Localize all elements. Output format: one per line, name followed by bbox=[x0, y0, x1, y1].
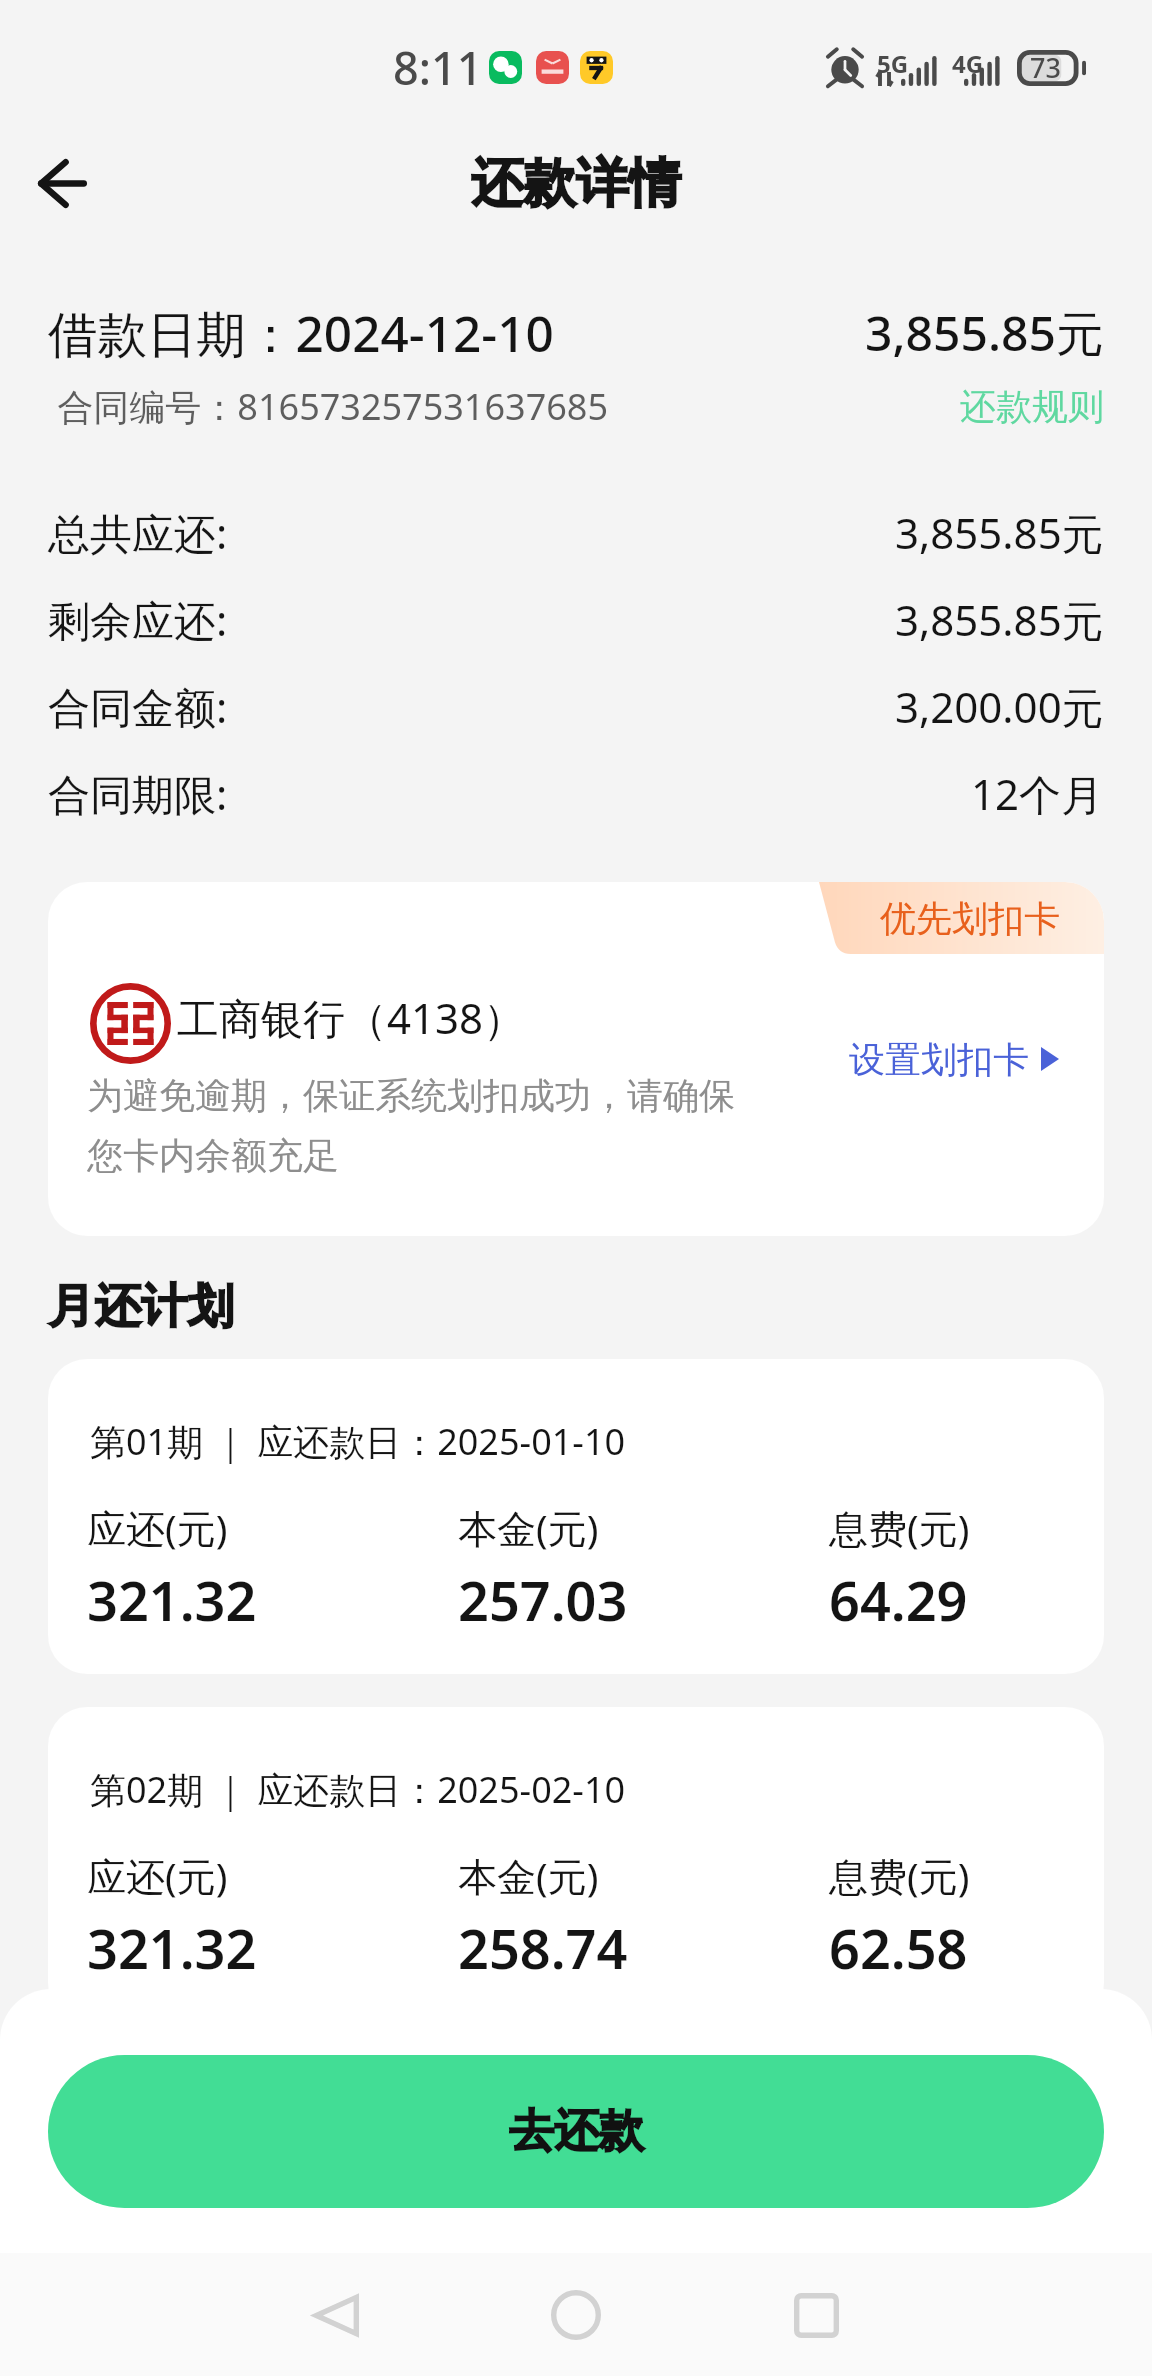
staticText: 应还(元) bbox=[87, 1849, 228, 1902]
staticText: 合同编号：816573257531637685 bbox=[48, 382, 609, 431]
button[interactable]: 第01期 ｜ 应还款日：2025-01-10 bbox=[48, 1359, 1104, 1674]
staticText: 总共应还: bbox=[48, 504, 228, 561]
staticText: 月还计划 bbox=[48, 1277, 234, 1336]
button[interactable]: Home bbox=[534, 2273, 618, 2357]
staticText: 本金(元) bbox=[458, 1501, 599, 1554]
staticText: 您卡内余额充足 bbox=[87, 1133, 339, 1178]
staticText: 64.29 bbox=[829, 1563, 968, 1629]
staticText: 4G bbox=[952, 47, 984, 80]
staticText: 62.58 bbox=[829, 1911, 968, 1977]
staticText: 8:11 bbox=[393, 37, 483, 98]
button[interactable]: 优先划扣卡 bbox=[48, 882, 1104, 1236]
staticText: 息费(元) bbox=[829, 1501, 970, 1554]
staticText: 73 bbox=[1030, 49, 1061, 85]
staticText: 3,855.85元 bbox=[865, 300, 1104, 366]
staticText: 为避免逾期，保证系统划扣成功，请确保 bbox=[87, 1073, 735, 1118]
button[interactable]: 第02期 ｜ 应还款日：2025-02-10 bbox=[48, 1707, 1104, 2022]
button[interactable]: Back bbox=[2, 123, 122, 243]
staticText: 257.03 bbox=[458, 1563, 628, 1629]
staticText: 合同金额: bbox=[48, 678, 228, 735]
staticText: 剩余应还: bbox=[48, 591, 228, 648]
staticText: 应还(元) bbox=[87, 1501, 228, 1554]
button[interactable]: Back bbox=[293, 2273, 377, 2357]
staticText: 258.74 bbox=[458, 1911, 628, 1977]
staticText: 3,200.00元 bbox=[895, 678, 1104, 735]
button[interactable]: 去还款 bbox=[48, 2055, 1104, 2208]
staticText: 合同期限: bbox=[48, 765, 228, 822]
staticText: 3,855.85元 bbox=[895, 504, 1104, 561]
staticText: 第01期 ｜ 应还款日：2025-01-10 bbox=[90, 1417, 626, 1466]
staticText: 321.32 bbox=[87, 1563, 257, 1629]
staticText: 3,855.85元 bbox=[895, 591, 1104, 648]
staticText: 息费(元) bbox=[829, 1849, 970, 1902]
staticText: 工商银行（4138） bbox=[177, 989, 526, 1046]
staticText: 借款日期：2024-12-10 bbox=[48, 299, 554, 367]
staticText: 321.32 bbox=[87, 1911, 257, 1977]
staticText: 本金(元) bbox=[458, 1849, 599, 1902]
staticText: 设置划扣卡 bbox=[849, 1037, 1029, 1082]
button[interactable]: 设置划扣卡 bbox=[849, 1035, 1059, 1083]
staticText: 去还款 bbox=[509, 2103, 644, 2160]
staticText: 5G bbox=[877, 47, 909, 80]
staticText: 第02期 ｜ 应还款日：2025-02-10 bbox=[90, 1765, 626, 1814]
button[interactable]: Recents bbox=[774, 2273, 858, 2357]
staticText: 优先划扣卡 bbox=[880, 896, 1060, 941]
staticText: 12个月 bbox=[971, 765, 1104, 822]
staticText: 还款详情 bbox=[471, 150, 681, 216]
button[interactable]: 还款规则 bbox=[960, 384, 1104, 429]
